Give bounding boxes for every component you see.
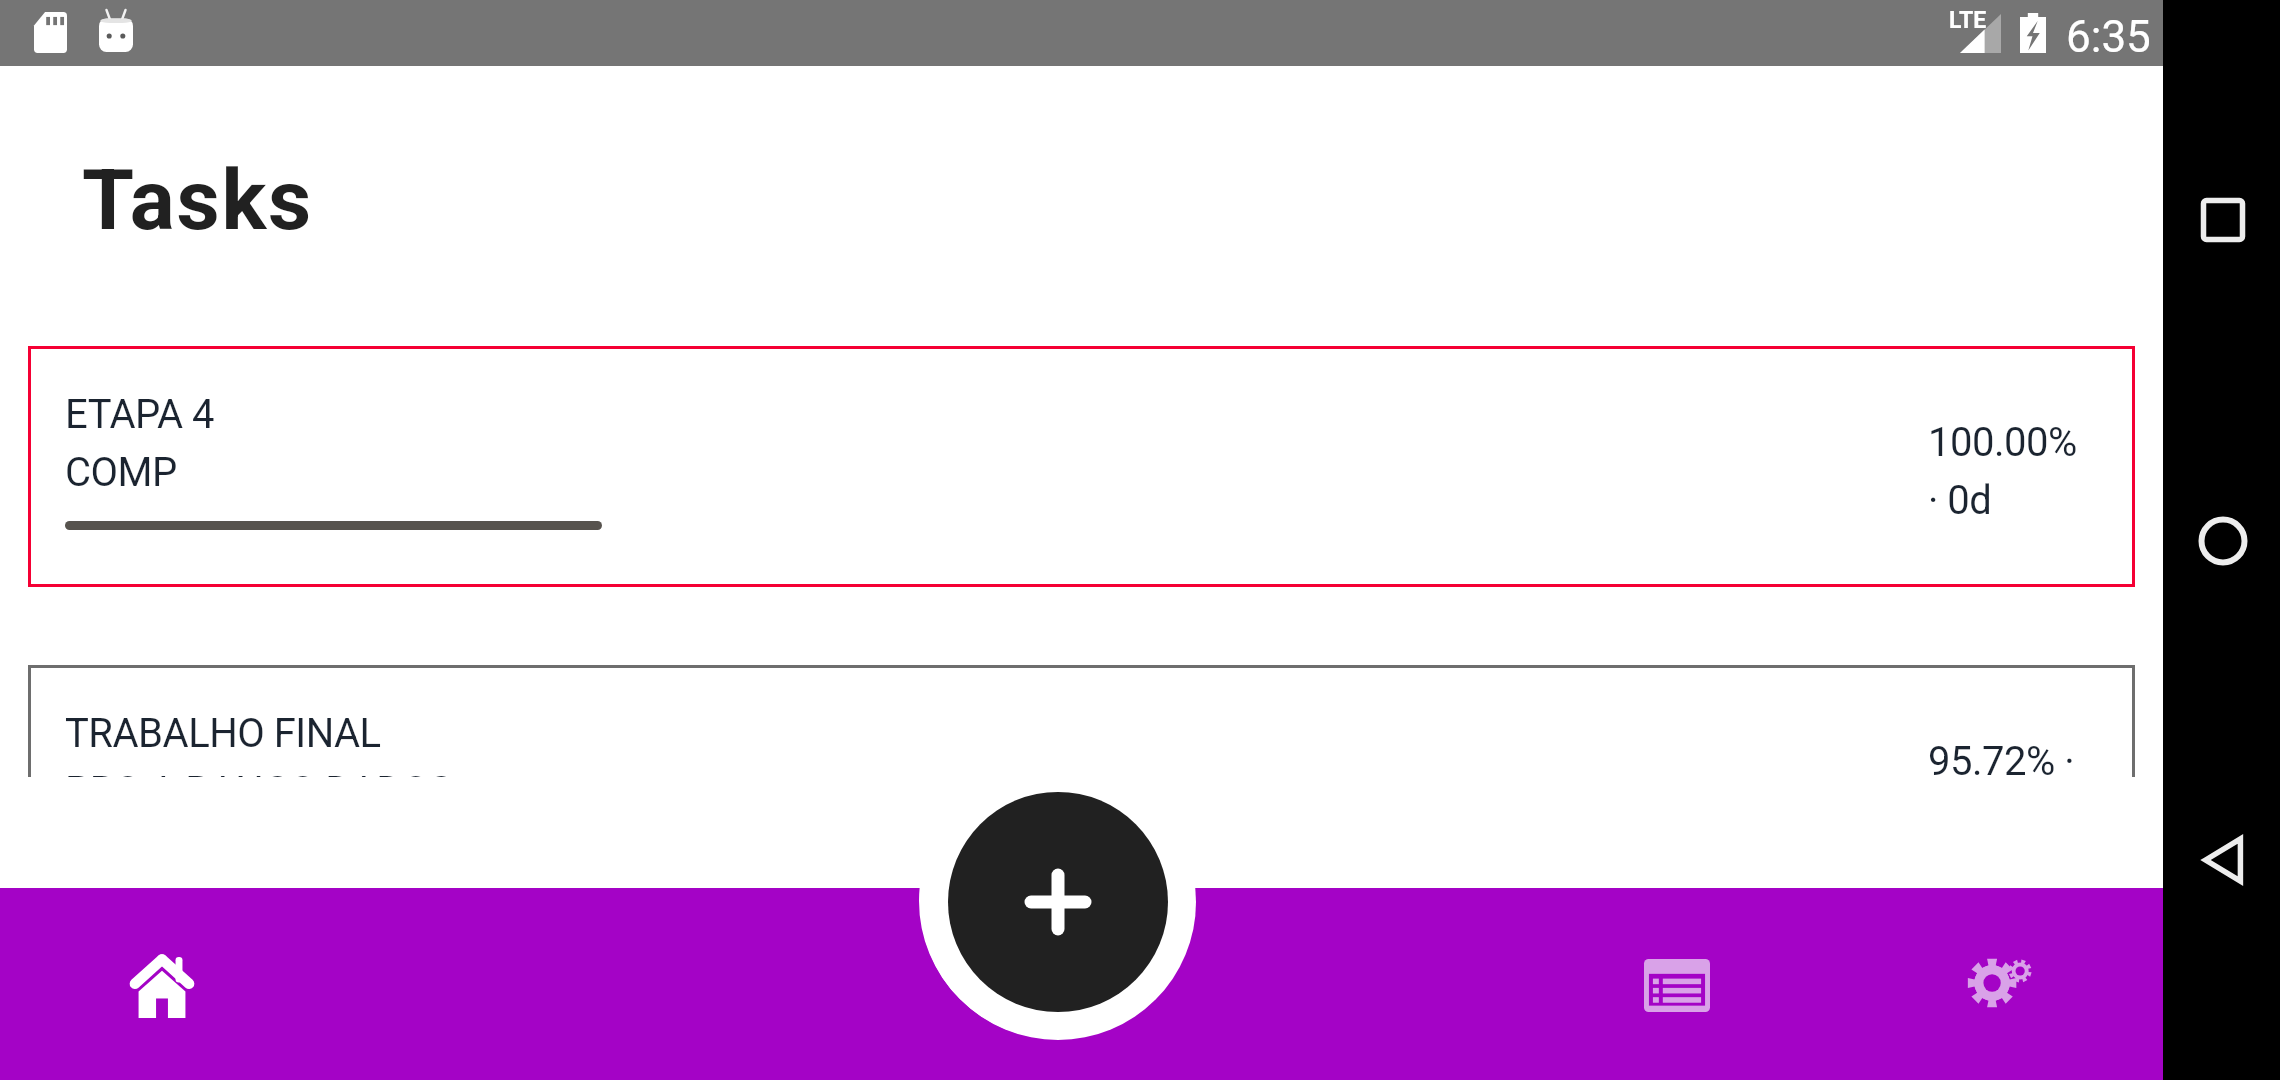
staticText: ETAPA 4 COMP [65,391,215,496]
staticText: TRABALHO FINAL PRO A BANCO DADOS [65,710,453,777]
staticText: 95.72% · 12d [1928,738,2075,777]
staticText: 100.00% · 0d [1928,419,2077,524]
button[interactable]: Home [2197,515,2249,567]
staticText: Tasks [82,151,314,249]
button[interactable]: TRABALHO FINAL PRO A BANCO DADOS [28,665,2135,777]
button[interactable]: Home [0,888,324,1080]
button[interactable]: Settings [1839,888,2163,1080]
staticText: LTE [1949,7,1987,34]
button[interactable]: ETAPA 4 COMP [28,346,2135,587]
button[interactable]: Back [2197,834,2249,886]
button[interactable]: Recents [2197,194,2249,246]
button[interactable]: Task list [1515,888,1839,1080]
staticText: 6:35 [2066,11,2151,63]
button[interactable]: Add task [948,792,1168,1012]
